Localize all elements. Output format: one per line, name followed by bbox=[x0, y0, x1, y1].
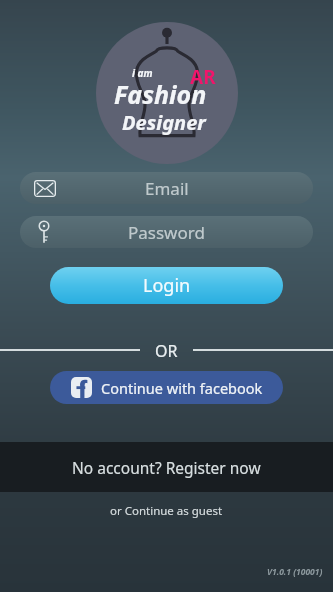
staticText: OR bbox=[155, 340, 178, 360]
staticText: i am bbox=[132, 66, 153, 80]
button[interactable]: Continue with facebook bbox=[50, 371, 283, 404]
button[interactable]: Email bbox=[20, 172, 313, 204]
staticText: or Continue as guest bbox=[110, 503, 223, 519]
button[interactable]: Login bbox=[50, 267, 283, 304]
staticText: Password bbox=[128, 221, 205, 244]
staticText: No account? Register now bbox=[72, 457, 261, 478]
staticText: Login bbox=[143, 273, 191, 298]
staticText: V1.0.1 (10001) bbox=[267, 566, 323, 578]
staticText: Continue with facebook bbox=[101, 378, 263, 398]
other: Email bbox=[34, 180, 56, 197]
staticText: Fashion bbox=[114, 77, 207, 111]
staticText: AR bbox=[190, 64, 216, 90]
other: Password bbox=[37, 220, 51, 244]
staticText: Designer bbox=[122, 109, 206, 136]
staticText: Email bbox=[145, 177, 189, 200]
button[interactable]: Password bbox=[20, 216, 313, 248]
button[interactable]: No account? Register now bbox=[0, 442, 333, 492]
button[interactable]: or Continue as guest bbox=[0, 498, 333, 524]
